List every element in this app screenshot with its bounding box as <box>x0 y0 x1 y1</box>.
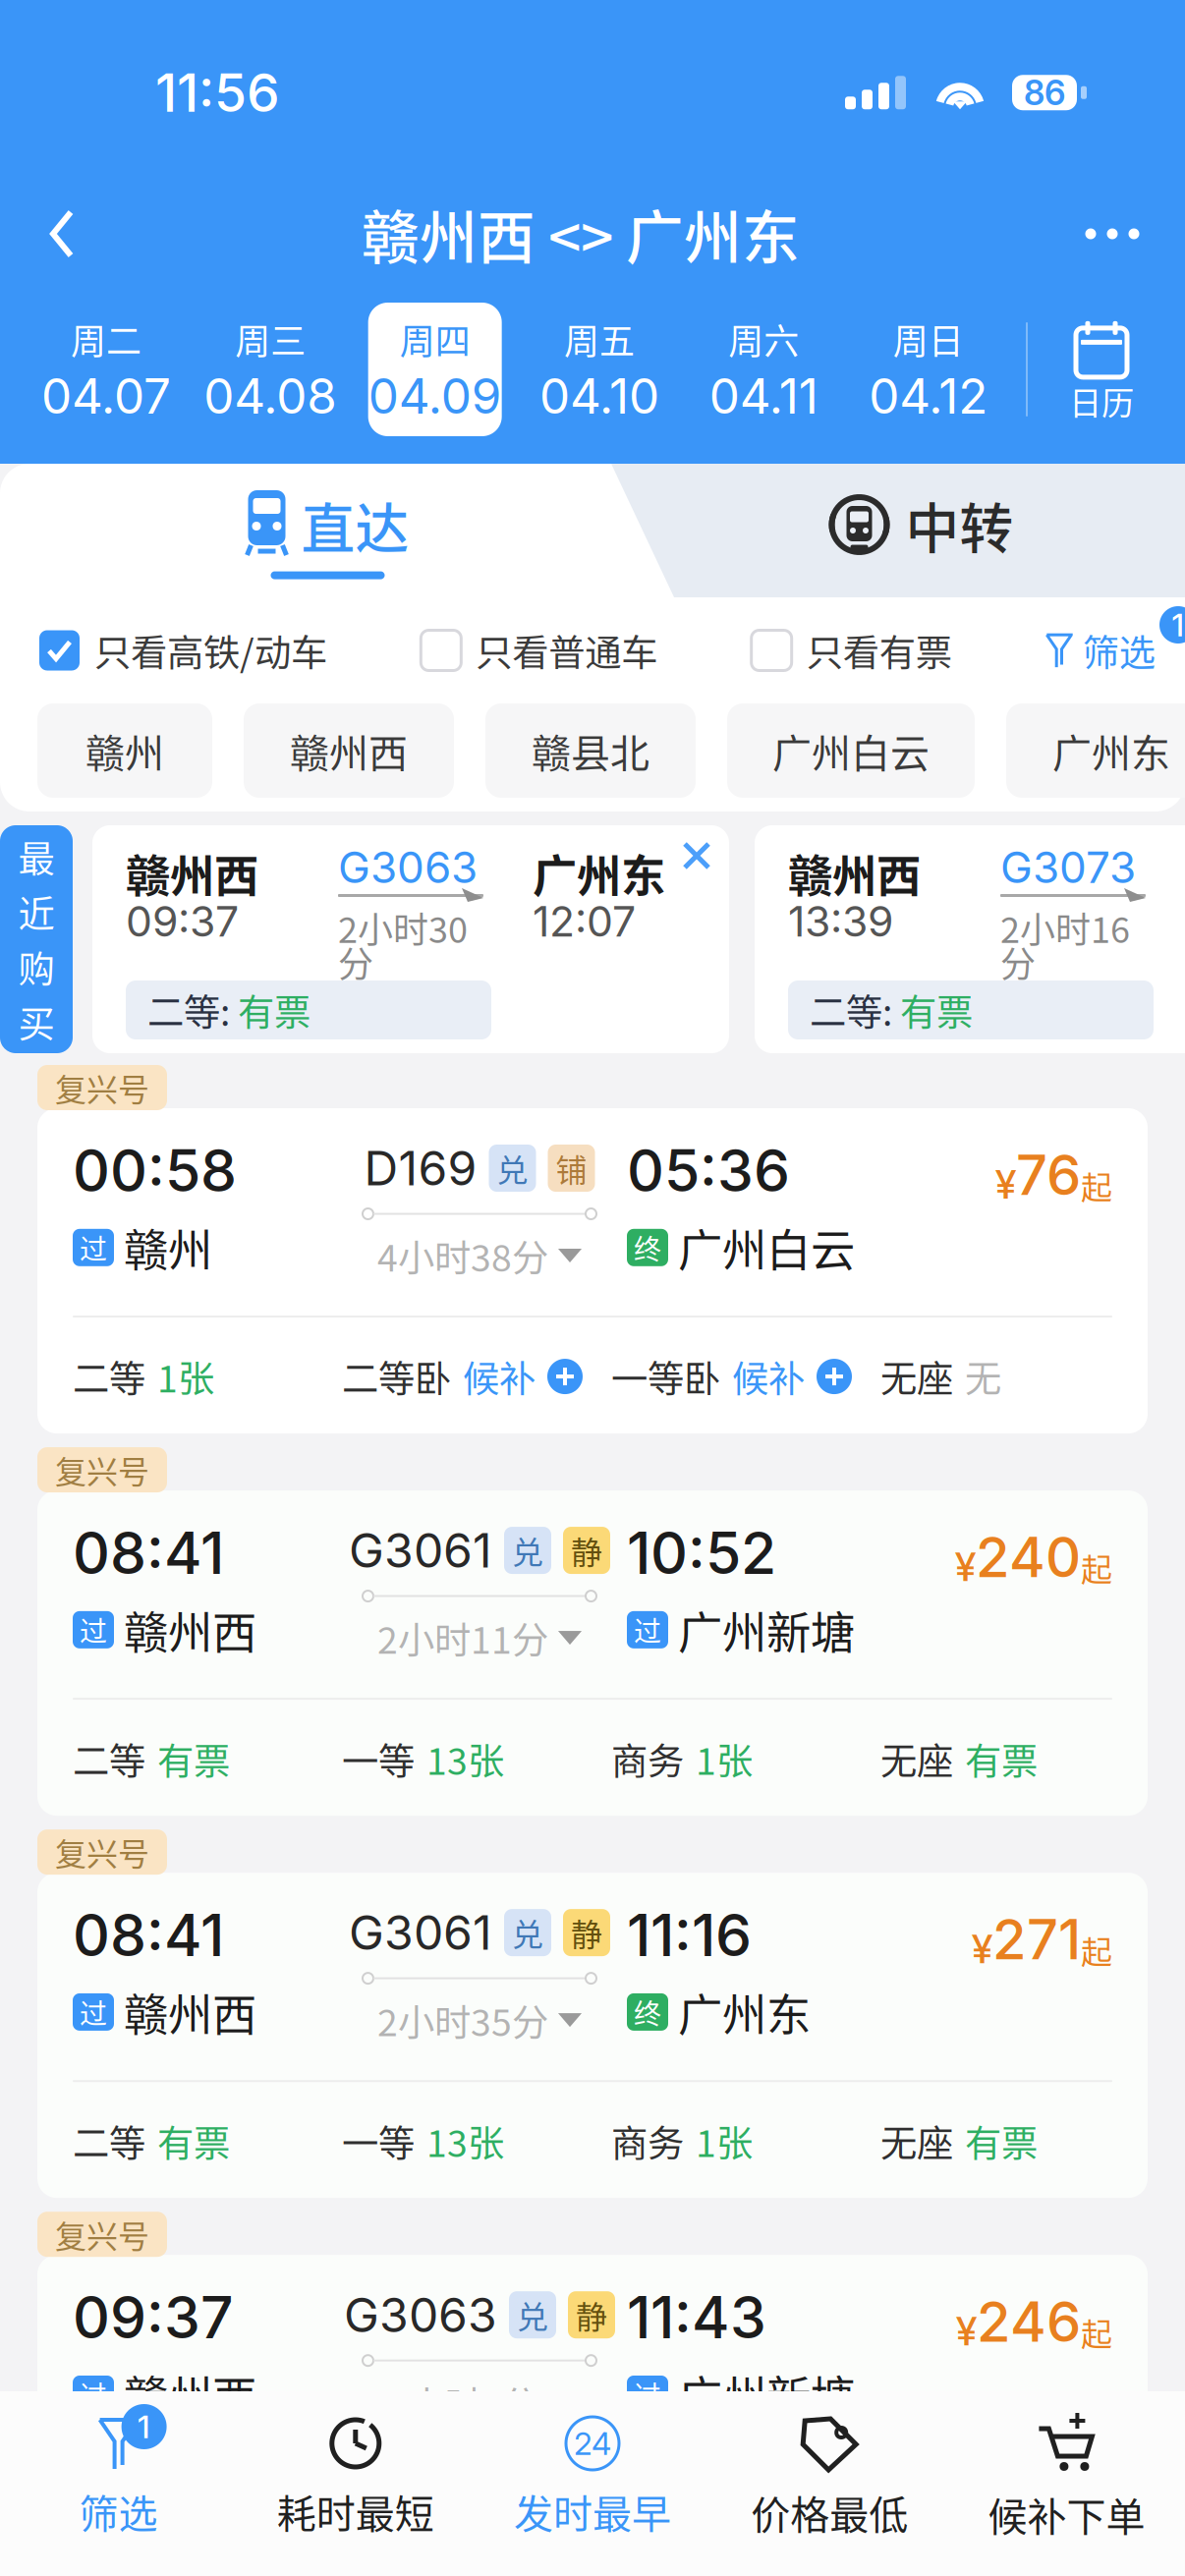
staticText: 有票 <box>965 2497 1038 2550</box>
staticText: 1 <box>138 2408 150 2446</box>
staticText: 11:56 <box>155 61 280 124</box>
button[interactable]: 赣州 <box>37 703 212 798</box>
button[interactable]: 08:41 <box>37 1873 1148 2198</box>
button[interactable]: 中转 <box>624 464 1185 597</box>
staticText: 商务 <box>611 1732 684 1785</box>
staticText: 购 <box>18 940 55 993</box>
staticText: 静 <box>576 2292 607 2338</box>
staticText: 2小时11分 <box>377 1611 548 1664</box>
button[interactable]: 候补下单 <box>948 2413 1185 2542</box>
staticText: 兑 <box>512 1910 543 1955</box>
staticText: 候补 <box>463 1350 536 1403</box>
staticText: 2小时6分 <box>388 2376 538 2429</box>
staticText: 周六 <box>728 314 799 365</box>
staticText: ¥ <box>972 1925 992 1973</box>
staticText: 2小时16 <box>1000 902 1130 953</box>
button[interactable]: 更多 <box>1055 185 1185 283</box>
staticText: 周二 <box>71 314 141 365</box>
button[interactable]: 赣州西 <box>92 825 729 1053</box>
button[interactable]: 周五 <box>533 303 666 436</box>
staticText: 发时最早 <box>514 2483 671 2540</box>
button[interactable]: 赣县北 <box>485 703 696 798</box>
staticText: 09:37 <box>73 2282 234 2352</box>
staticText: 广州白云 <box>772 722 930 779</box>
staticText: 兑 <box>497 1145 528 1191</box>
button[interactable]: 只看高铁/动车 <box>39 618 327 683</box>
staticText: D169 <box>364 1140 477 1197</box>
staticText: 1 <box>1172 606 1185 644</box>
button[interactable]: 日历 <box>1028 303 1175 436</box>
staticText: 复兴号 <box>55 2212 149 2257</box>
staticText: 直达 <box>301 486 409 564</box>
staticText: 兑 <box>517 2292 548 2338</box>
button[interactable]: 周日 <box>861 303 995 436</box>
staticText: 04.12 <box>869 367 988 425</box>
staticText: 1张 <box>696 2114 753 2167</box>
staticText: 起 <box>1081 1927 1112 1973</box>
button[interactable]: 价格最低 <box>711 2415 948 2541</box>
button[interactable]: 筛选 <box>1045 618 1185 683</box>
staticText: 08:41 <box>73 1900 224 1970</box>
staticText: 过 <box>80 2374 107 2414</box>
button[interactable]: 耗时最短 <box>237 2416 474 2540</box>
staticText: 有票 <box>965 1732 1038 1785</box>
staticText: 周五 <box>564 314 635 365</box>
button[interactable]: 只看普通车 <box>421 618 658 683</box>
staticText: 赣州 <box>85 722 164 779</box>
staticText: 赣州西 <box>126 841 258 905</box>
staticText: 复兴号 <box>55 1829 149 1875</box>
staticText: 05:36 <box>627 1136 790 1205</box>
staticText: 静 <box>571 1528 602 1573</box>
staticText: 复兴号 <box>55 1065 149 1110</box>
staticText: 无座 <box>880 2497 953 2550</box>
staticText: 13:39 <box>788 896 893 947</box>
staticText: 周三 <box>235 314 306 365</box>
staticText: 1张 <box>696 1732 753 1785</box>
staticText: 终 <box>634 1992 661 2032</box>
button[interactable]: 24 <box>474 2416 711 2540</box>
staticText: 1张 <box>157 1350 214 1403</box>
button[interactable]: 周六 <box>697 303 831 436</box>
button[interactable]: 直达 <box>31 464 624 597</box>
staticText: 静 <box>571 1910 602 1955</box>
button[interactable]: 最 <box>0 825 73 1053</box>
button[interactable]: 周三 <box>204 303 337 436</box>
button[interactable]: 赣州西 <box>755 825 1185 1053</box>
button[interactable]: 00:58 <box>37 1108 1148 1434</box>
staticText: 04.09 <box>368 367 502 425</box>
staticText: 二等: <box>810 983 900 1037</box>
button[interactable]: 09:37 <box>37 2255 1148 2576</box>
button[interactable]: 08:41 <box>37 1490 1148 1816</box>
staticText: 2小时30 <box>338 902 468 953</box>
staticText: 候补 <box>732 1350 805 1403</box>
staticText: 筛选 <box>79 2483 158 2540</box>
button[interactable]: 周二 <box>39 303 173 436</box>
staticText: 有票 <box>238 983 310 1037</box>
button[interactable]: 广州东 <box>1006 703 1185 798</box>
staticText: 246 <box>977 2288 1081 2355</box>
button[interactable]: 周四 <box>368 303 502 436</box>
staticText: 终 <box>634 1228 661 1267</box>
staticText: 商务 <box>611 2497 684 2550</box>
button[interactable]: 返回 <box>0 185 106 283</box>
staticText: 只看普通车 <box>476 624 658 677</box>
staticText: 广州白云 <box>678 1215 855 1280</box>
staticText: 赣州西 <> 广州东 <box>362 192 800 276</box>
staticText: 铺 <box>556 1145 587 1191</box>
button[interactable]: 关闭 <box>678 825 729 874</box>
button[interactable]: 只看有票 <box>751 618 952 683</box>
staticText: 08:41 <box>73 1518 224 1588</box>
staticText: 广州东 <box>533 841 665 905</box>
staticText: 筛选 <box>1083 624 1155 677</box>
staticText: G3063 <box>338 841 478 893</box>
staticText: 周日 <box>893 314 964 365</box>
staticText: 分 <box>1000 936 1036 987</box>
button[interactable]: 赣州西 <box>244 703 454 798</box>
button[interactable]: 广州白云 <box>727 703 975 798</box>
staticText: 4小时38分 <box>377 1229 548 1282</box>
staticText: 赣县北 <box>532 722 649 779</box>
staticText: 商务 <box>611 2114 684 2167</box>
button[interactable]: 1 <box>0 2416 237 2540</box>
staticText: 04.10 <box>539 367 659 425</box>
staticText: 过 <box>80 1228 107 1267</box>
